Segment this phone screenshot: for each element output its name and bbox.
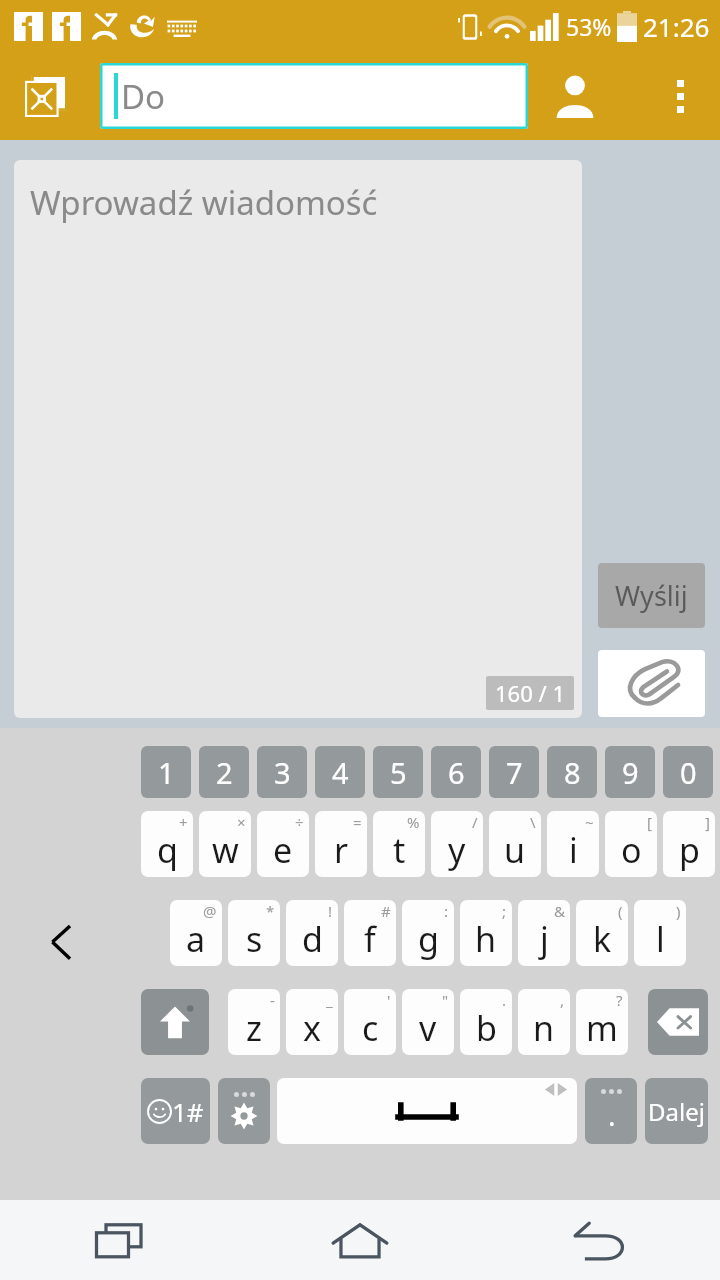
button[interactable]: ( [576, 900, 628, 966]
staticText: k [593, 916, 612, 962]
button[interactable]: Wprowadź wiadomość [14, 160, 582, 718]
button[interactable]: : [402, 900, 454, 966]
staticText: Do [121, 74, 166, 119]
staticText: 1 [158, 753, 175, 792]
staticText: 1# [172, 1094, 204, 1129]
button[interactable]: . [460, 989, 512, 1055]
button[interactable]: Collapse [22, 72, 70, 120]
button[interactable]: 8 [547, 746, 597, 798]
button[interactable]: ] [663, 811, 715, 877]
staticText: = [353, 812, 362, 832]
staticText: + [179, 812, 188, 832]
staticText: m [586, 1005, 618, 1051]
staticText: 6 [448, 753, 465, 792]
staticText: i [569, 827, 578, 873]
staticText: Wyślij [615, 577, 688, 614]
button[interactable]: More options [654, 70, 706, 122]
staticText: . [502, 990, 507, 1010]
button[interactable]: Backspace [648, 989, 708, 1055]
button[interactable]: . [585, 1078, 637, 1144]
button[interactable]: 6 [431, 746, 481, 798]
staticText: b [476, 1005, 497, 1051]
staticText: 3 [274, 753, 291, 792]
button[interactable]: 9 [605, 746, 655, 798]
staticText: ( [618, 901, 623, 921]
staticText: ÷ [295, 812, 304, 832]
button[interactable]: Back [480, 1200, 720, 1280]
button[interactable]: Previous [30, 910, 94, 974]
button[interactable]: 0 [663, 746, 713, 798]
staticText: @ [203, 901, 217, 921]
button[interactable]: Home [240, 1200, 480, 1280]
button[interactable]: + [141, 811, 193, 877]
button[interactable]: @ [170, 900, 222, 966]
button[interactable]: , [518, 989, 570, 1055]
button[interactable]: \ [489, 811, 541, 877]
button[interactable]: & [518, 900, 570, 966]
staticText: " [442, 990, 449, 1010]
staticText: ; [502, 901, 507, 921]
staticText: 5 [390, 753, 407, 792]
staticText: ) [676, 901, 681, 921]
staticText: : [444, 901, 449, 921]
button[interactable]: × [199, 811, 251, 877]
staticText: s [246, 916, 263, 962]
staticText: / [472, 812, 478, 832]
staticText: v [419, 1005, 437, 1051]
staticText: 53% [566, 11, 612, 42]
staticText: f [364, 916, 376, 962]
button[interactable]: / [431, 811, 483, 877]
button[interactable]: Do [100, 63, 528, 129]
button[interactable]: _ [286, 989, 338, 1055]
button[interactable]: # [344, 900, 396, 966]
button[interactable]: ; [460, 900, 512, 966]
staticText: Dalej [648, 1095, 705, 1128]
staticText: a [186, 916, 206, 962]
button[interactable]: Recents [0, 1200, 240, 1280]
staticText: [ [647, 812, 652, 832]
button[interactable]: % [373, 811, 425, 877]
button[interactable]: " [402, 989, 454, 1055]
staticText: × [237, 812, 246, 832]
button[interactable]: Keyboard settings [218, 1078, 270, 1144]
button[interactable]: Dalej [645, 1078, 708, 1144]
staticText: o [621, 827, 642, 873]
staticText: 21:26 [643, 9, 710, 44]
button[interactable]: Shift [141, 989, 209, 1055]
button[interactable]: ! [286, 900, 338, 966]
staticText: c [362, 1005, 379, 1051]
button[interactable]: 4 [315, 746, 365, 798]
staticText: 4 [332, 753, 349, 792]
staticText: . [608, 1096, 616, 1134]
button[interactable]: Contacts [546, 67, 604, 125]
staticText: 8 [564, 753, 581, 792]
staticText: % [407, 812, 420, 832]
button[interactable]: Wyślij [598, 563, 705, 628]
button[interactable]: * [228, 900, 280, 966]
button[interactable]: ) [634, 900, 686, 966]
button[interactable]: ? [576, 989, 628, 1055]
button[interactable]: 2 [199, 746, 249, 798]
button[interactable]: ÷ [257, 811, 309, 877]
staticText: \ [530, 812, 536, 832]
button[interactable]: [ [605, 811, 657, 877]
button[interactable]: Attach [598, 650, 705, 717]
staticText: ~ [585, 812, 594, 832]
button[interactable]: ' [344, 989, 396, 1055]
staticText: r [334, 827, 349, 873]
button[interactable]: 7 [489, 746, 539, 798]
button[interactable]: Space [277, 1078, 577, 1144]
button[interactable]: 3 [257, 746, 307, 798]
button[interactable]: 5 [373, 746, 423, 798]
staticText: p [679, 827, 700, 873]
staticText: ' [387, 990, 391, 1010]
button[interactable]: = [315, 811, 367, 877]
staticText: * [266, 901, 275, 921]
button[interactable]: Symbols [141, 1078, 210, 1144]
button[interactable]: 1 [141, 746, 191, 798]
staticText: Wprowadź wiadomość [30, 180, 378, 225]
staticText: j [540, 916, 549, 962]
button[interactable]: - [228, 989, 280, 1055]
staticText: ] [705, 812, 710, 832]
button[interactable]: ~ [547, 811, 599, 877]
